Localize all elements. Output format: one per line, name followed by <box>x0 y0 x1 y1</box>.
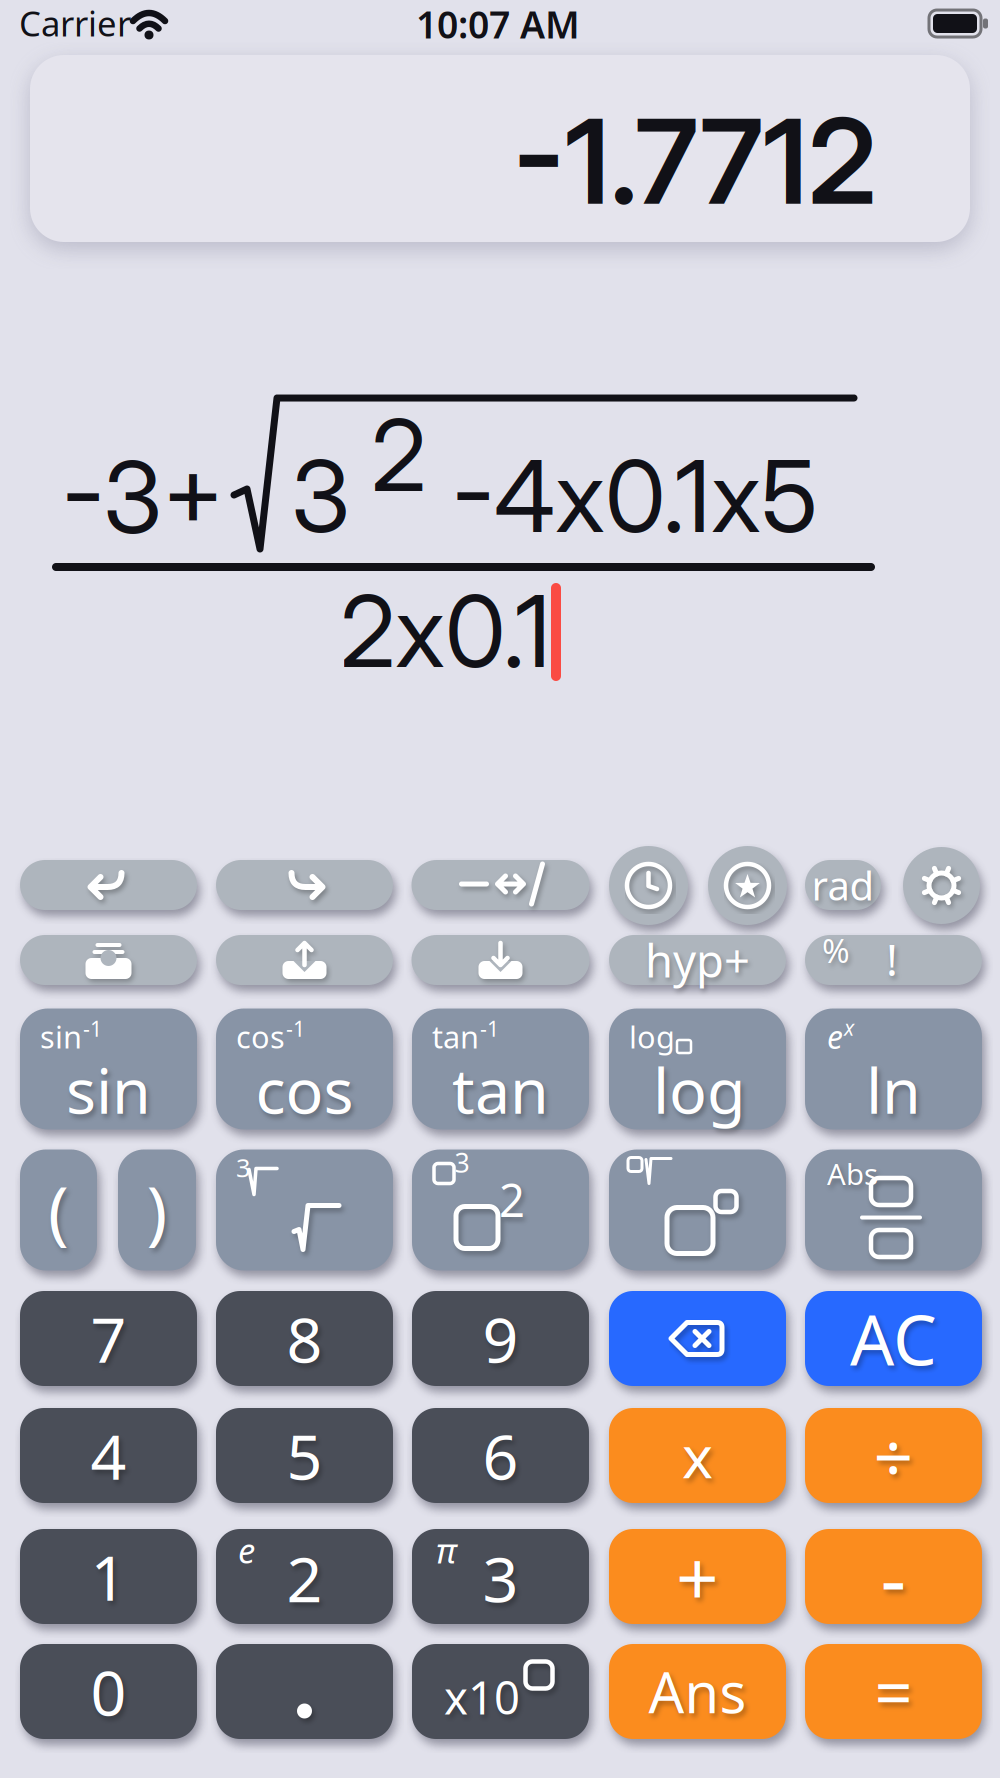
button[interactable]: cos <box>216 1008 393 1129</box>
button[interactable] <box>903 847 980 924</box>
staticText: 9 <box>482 1297 518 1380</box>
staticText: 8 <box>286 1297 322 1380</box>
staticText: -1.7712 <box>513 90 877 232</box>
staticText: 1 <box>90 1535 126 1618</box>
staticText: 5 <box>286 1414 322 1497</box>
button[interactable]: AC <box>805 1291 982 1386</box>
button[interactable] <box>609 1291 786 1386</box>
staticText: cos <box>236 1016 285 1057</box>
button[interactable]: = <box>805 1644 982 1739</box>
staticText: 10:07 AM <box>416 0 580 49</box>
button[interactable]: 7 <box>20 1291 197 1386</box>
button[interactable]: e <box>216 1529 393 1624</box>
button[interactable]: + <box>609 1529 786 1624</box>
staticText: ! <box>886 930 898 988</box>
staticText: rad <box>811 858 874 911</box>
staticText: -1 <box>480 1014 499 1043</box>
staticText: sin <box>66 1048 151 1131</box>
button[interactable]: ( <box>20 1149 97 1270</box>
staticText: -1 <box>83 1014 102 1043</box>
staticText: cos <box>255 1048 353 1131</box>
staticText: ( <box>48 1164 69 1256</box>
staticText: π <box>436 1527 456 1573</box>
staticText: -4х0.1х5 <box>452 436 818 556</box>
button[interactable] <box>609 846 688 925</box>
staticText: 2 <box>499 1169 525 1230</box>
staticText: 7 <box>90 1297 126 1380</box>
button[interactable] <box>216 860 393 910</box>
button[interactable]: 3 <box>216 1149 393 1270</box>
button[interactable] <box>216 1644 393 1739</box>
button[interactable]: 5 <box>216 1408 393 1503</box>
staticText: ÷ <box>873 1409 913 1502</box>
button[interactable]: % <box>805 935 982 985</box>
staticText: Ans <box>648 1654 746 1729</box>
button[interactable]: x10 <box>412 1644 589 1739</box>
staticText: x10 <box>444 1667 520 1727</box>
button[interactable]: Abs <box>805 1149 982 1270</box>
staticText: hyp+ <box>645 930 750 990</box>
staticText: log <box>629 1016 675 1057</box>
staticText: - <box>880 1523 906 1630</box>
button[interactable]: 6 <box>412 1408 589 1503</box>
button[interactable]: e <box>805 1008 982 1129</box>
button[interactable]: x <box>609 1408 786 1503</box>
button[interactable] <box>216 935 393 985</box>
staticText: 2 <box>371 395 426 515</box>
button[interactable] <box>411 860 589 910</box>
staticText: tan <box>452 1048 549 1131</box>
staticText: 2х0.1 <box>340 571 551 691</box>
button[interactable]: 9 <box>412 1291 589 1386</box>
staticText: = <box>874 1647 912 1736</box>
button[interactable]: - <box>805 1529 982 1624</box>
staticText: 4 <box>90 1414 126 1497</box>
staticText: sin <box>40 1016 82 1057</box>
staticText: log <box>653 1048 746 1131</box>
button[interactable]: ) <box>118 1149 196 1270</box>
staticText: ln <box>866 1048 921 1131</box>
button[interactable] <box>20 935 197 985</box>
button[interactable]: 8 <box>216 1291 393 1386</box>
button[interactable] <box>708 846 787 925</box>
staticText: 3 <box>236 1151 250 1184</box>
staticText: e <box>238 1527 255 1573</box>
button[interactable]: tan <box>412 1008 589 1129</box>
button[interactable] <box>20 860 197 910</box>
staticText: x <box>844 1013 854 1042</box>
button[interactable]: log <box>609 1008 786 1129</box>
button[interactable]: 4 <box>20 1408 197 1503</box>
button[interactable]: hyp+ <box>609 935 786 985</box>
button[interactable]: 3 <box>412 1149 589 1270</box>
staticText: Carrier <box>19 0 131 46</box>
staticText: 6 <box>482 1414 518 1497</box>
staticText: e <box>827 1015 843 1058</box>
staticText: AC <box>850 1292 937 1385</box>
button[interactable]: ÷ <box>805 1408 982 1503</box>
staticText: 3 <box>482 1536 518 1620</box>
staticText: -1 <box>286 1014 305 1043</box>
button[interactable]: sin <box>20 1008 197 1129</box>
button[interactable] <box>609 1149 786 1270</box>
button[interactable]: Ans <box>609 1644 786 1739</box>
staticText: 3 <box>291 436 350 556</box>
button[interactable]: 0 <box>20 1644 197 1739</box>
staticText: + <box>676 1527 719 1626</box>
staticText: 2 <box>286 1536 322 1620</box>
staticText: 0 <box>90 1650 126 1733</box>
button[interactable]: π <box>412 1529 589 1624</box>
staticText: ) <box>146 1164 167 1256</box>
button[interactable] <box>411 935 589 985</box>
staticText: -3+ <box>62 437 224 557</box>
staticText: tan <box>432 1016 479 1057</box>
staticText: Abs <box>827 1154 878 1193</box>
staticText: x <box>682 1416 713 1494</box>
button[interactable]: rad <box>805 860 881 910</box>
staticText: % <box>822 928 850 972</box>
staticText: 3 <box>454 1145 469 1180</box>
button[interactable]: 1 <box>20 1529 197 1624</box>
